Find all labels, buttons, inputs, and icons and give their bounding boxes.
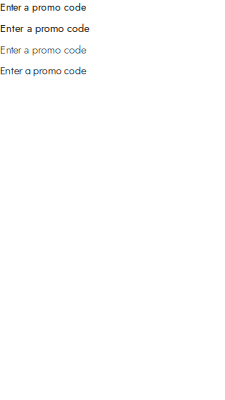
- staticText: Enter a promo code: [0, 21, 89, 36]
- staticText: Enter a promo code: [0, 0, 86, 15]
- staticText: Enter a promo code: [0, 42, 86, 57]
- staticText: Enter a promo code: [0, 63, 86, 77]
